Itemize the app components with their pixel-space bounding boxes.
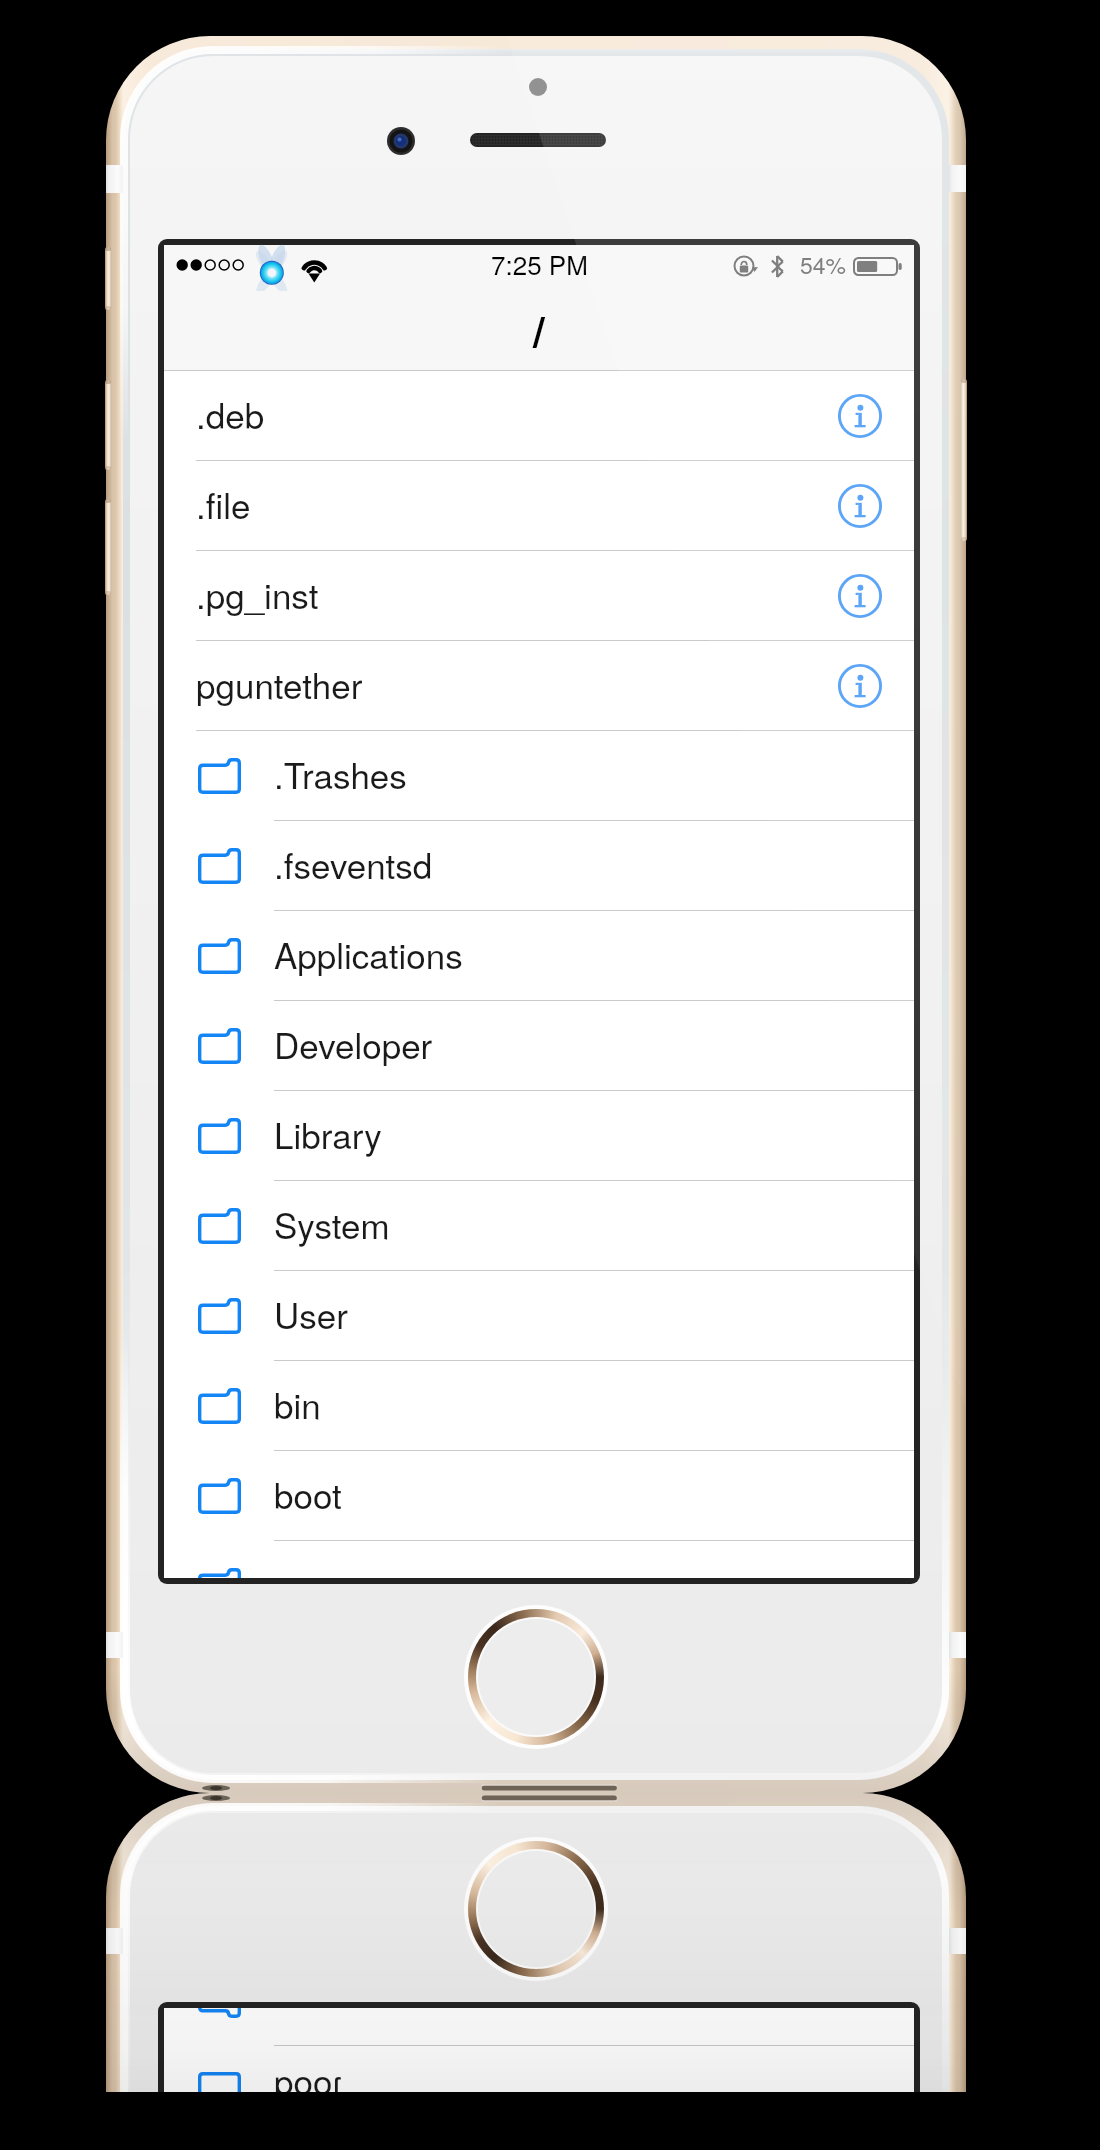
button[interactable]: Library: [164, 1091, 914, 1181]
staticText: /: [533, 300, 545, 360]
button[interactable]: .pg_inst: [164, 551, 914, 641]
staticText: pguntether: [196, 659, 363, 709]
staticText: .file: [196, 479, 251, 529]
staticText: .pg_inst: [196, 569, 319, 619]
staticText: boot: [274, 1469, 342, 1519]
button[interactable]: cores: [164, 2008, 914, 2045]
button[interactable]: pguntether: [164, 641, 914, 731]
staticText: Applications: [274, 929, 463, 979]
button[interactable]: Info: [834, 570, 886, 622]
staticText: User: [274, 1289, 348, 1339]
button[interactable]: User: [164, 1271, 914, 1361]
staticText: .Trashes: [274, 749, 407, 799]
button[interactable]: Info: [834, 390, 886, 442]
button[interactable]: System: [164, 1181, 914, 1271]
staticText: Library: [274, 1109, 382, 1159]
button[interactable]: boot: [164, 1451, 914, 1541]
staticText: 54%: [800, 248, 847, 281]
button[interactable]: .Trashes: [164, 731, 914, 821]
staticText: System: [274, 1199, 390, 1249]
staticText: .deb: [196, 389, 265, 439]
button[interactable]: Info: [834, 480, 886, 532]
button[interactable]: .fseventsd: [164, 821, 914, 911]
button[interactable]: cores: [164, 1541, 914, 1578]
staticText: 7:25 PM: [491, 245, 588, 282]
staticText: .fseventsd: [274, 839, 433, 889]
button[interactable]: boot: [164, 2045, 914, 2092]
staticText: boot: [274, 2067, 342, 2092]
button[interactable]: Applications: [164, 911, 914, 1001]
staticText: Developer: [274, 1019, 433, 1069]
button[interactable]: bin: [164, 1361, 914, 1451]
button[interactable]: Info: [834, 660, 886, 712]
button[interactable]: .file: [164, 461, 914, 551]
staticText: bin: [274, 1379, 321, 1429]
button[interactable]: .deb: [164, 371, 914, 461]
button[interactable]: Developer: [164, 1001, 914, 1091]
